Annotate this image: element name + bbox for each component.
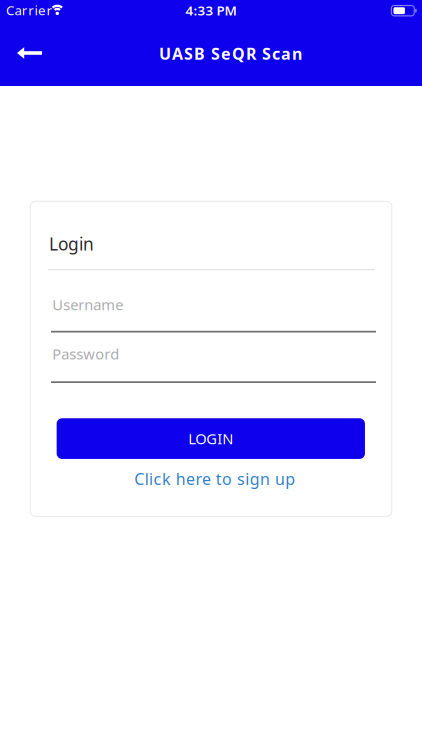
staticText: 4:33 PM — [185, 1, 236, 19]
button[interactable]: Click here to sign up — [134, 468, 295, 489]
staticText: Login — [49, 232, 94, 255]
staticText: Username — [52, 295, 123, 314]
button[interactable]: Password — [51, 341, 376, 383]
button[interactable] — [17, 47, 42, 59]
button[interactable]: LOGIN — [57, 418, 365, 459]
button[interactable]: Username — [51, 292, 376, 332]
staticText: Click here to sign up — [134, 468, 295, 489]
staticText: UASB SeQR Scan — [159, 43, 302, 64]
staticText: Password — [52, 344, 119, 363]
staticText: Carrier — [6, 1, 52, 19]
staticText: LOGIN — [188, 429, 233, 448]
